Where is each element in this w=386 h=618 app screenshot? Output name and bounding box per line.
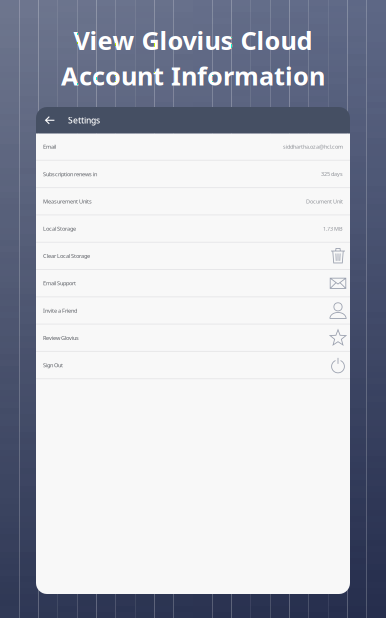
staticText: Invite a Friend [43, 307, 77, 314]
staticText: siddhartha.oza@hcl.com [283, 143, 343, 150]
button[interactable]: Back [40, 107, 60, 133]
staticText: Email Support [43, 279, 76, 287]
staticText: Settings [68, 114, 100, 126]
button[interactable]: Review Glovius [36, 325, 350, 351]
button[interactable]: Measurement Units [36, 188, 350, 214]
staticText: Email [43, 143, 56, 150]
staticText: Measurement Units [43, 197, 92, 205]
staticText: View Glovius Cloud [73, 23, 312, 57]
button[interactable]: Sign Out [36, 352, 350, 378]
staticText: 1.73 MB [323, 225, 343, 232]
staticText: Sign Out [43, 361, 63, 369]
staticText: Local Storage [43, 225, 76, 232]
button[interactable]: Invite a Friend [36, 297, 350, 324]
button[interactable]: Local Storage [36, 215, 350, 242]
staticText: 325 days [321, 170, 343, 178]
staticText: Account Information [61, 58, 325, 93]
button[interactable]: Email [36, 133, 350, 160]
button[interactable]: Subscription renews in [36, 161, 350, 187]
staticText: Clear Local Storage [43, 252, 90, 260]
button[interactable]: Email Support [36, 270, 350, 296]
staticText: Review Glovius [43, 334, 79, 341]
staticText: Document Unit [306, 197, 343, 205]
button[interactable]: Clear Local Storage [36, 243, 350, 269]
staticText: Subscription renews in [43, 170, 97, 178]
